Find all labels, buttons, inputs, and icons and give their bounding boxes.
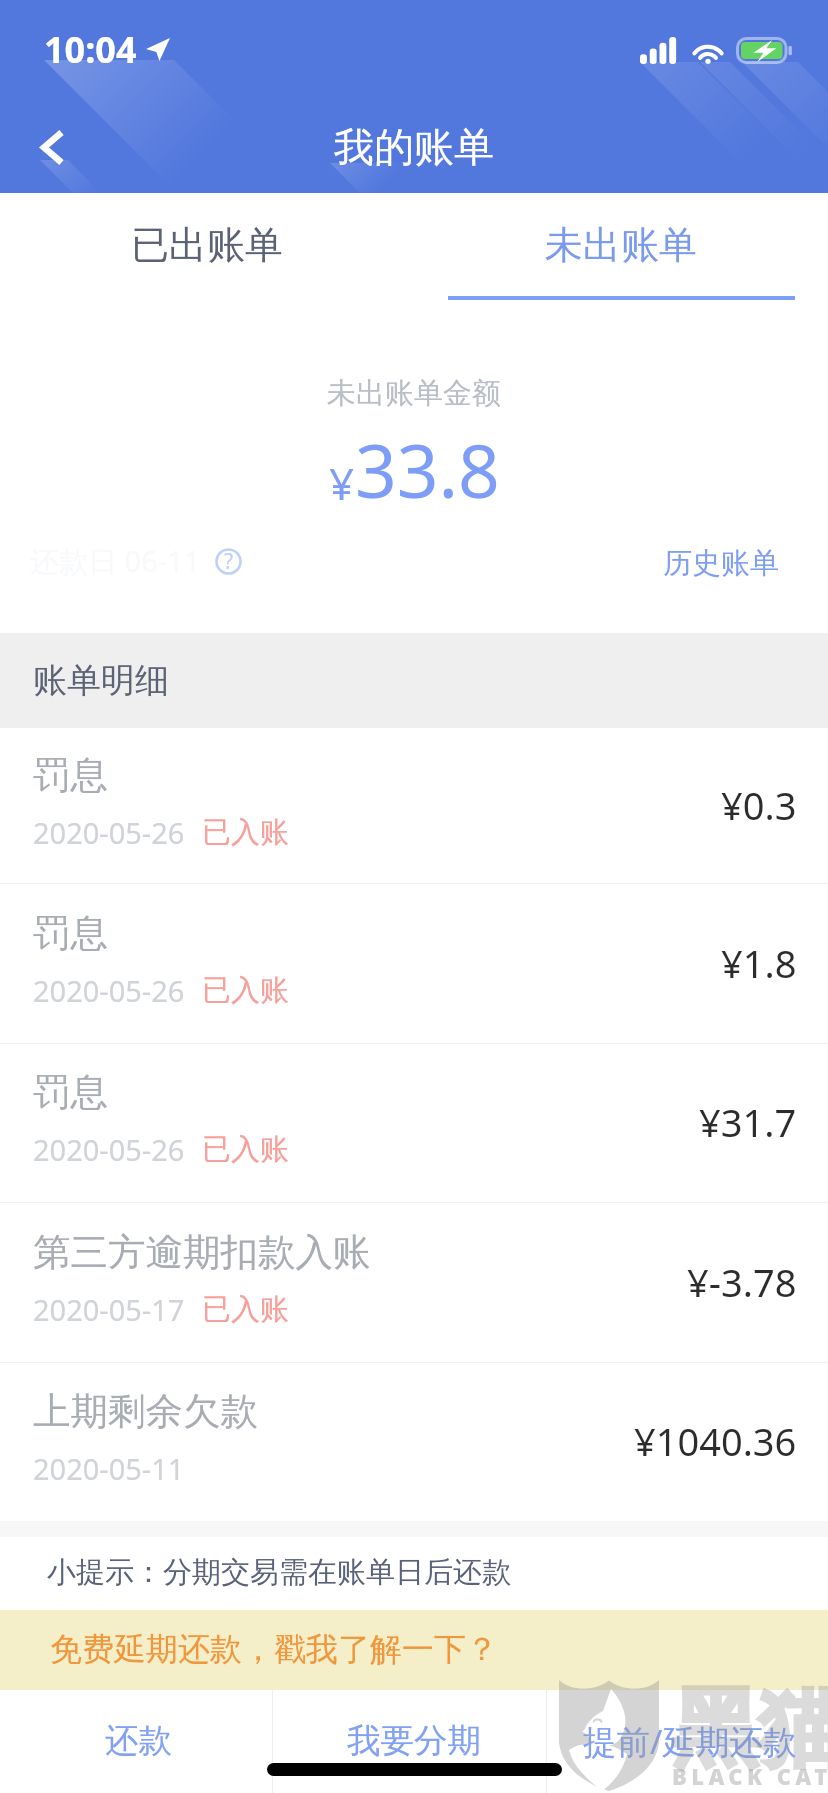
staticText: 2020-05-26 [33,813,185,852]
staticText: 上期剩余欠款 [33,1388,258,1435]
button[interactable]: 未出账单 [414,193,828,303]
staticText: 未出账单 [545,221,697,269]
staticText: 2020-05-26 [33,971,185,1010]
staticText: 还款 [105,1720,172,1762]
button[interactable]: 还款 [0,1690,276,1793]
staticText: 已入账 [202,1291,289,1328]
staticText: 已入账 [202,1131,289,1168]
staticText: 黑猫 [672,1675,828,1783]
staticText: 已出账单 [131,221,283,269]
button[interactable]: 第三方逾期扣款入账 [0,1203,828,1362]
staticText: 罚息 [33,752,108,799]
staticText: 2020-05-26 [33,1130,185,1169]
staticText: 我要分期 [347,1720,481,1762]
button[interactable]: 罚息 [0,884,828,1043]
staticText: 历史账单 [663,545,779,582]
button[interactable]: Back [14,103,90,179]
staticText: 2020-05-11 [33,1449,185,1488]
staticText: 未出账单金额 [327,375,501,412]
staticText: 罚息 [33,910,108,957]
button[interactable]: 上期剩余欠款 [0,1363,828,1521]
staticText: 已入账 [202,814,289,851]
staticText: 我的账单 [334,122,494,172]
staticText: ¥1.8 [721,937,797,989]
staticText: ¥1040.36 [634,1415,797,1467]
button[interactable]: 我要分期 [276,1690,552,1793]
staticText: 账单明细 [33,659,169,702]
button[interactable]: 免费延期还款，戳我了解一下？ [0,1610,828,1690]
staticText: ¥31.7 [699,1096,797,1148]
button[interactable]: 历史账单 [663,545,779,582]
staticText: 罚息 [33,1069,108,1116]
button[interactable]: 罚息 [0,1044,828,1202]
staticText: 第三方逾期扣款入账 [33,1229,371,1276]
button[interactable]: 已出账单 [0,193,414,303]
staticText: ? [224,547,234,576]
staticText: BLACK CAT [672,1761,828,1791]
button[interactable]: 罚息 [0,728,828,883]
staticText: 10:04 [44,25,137,74]
staticText: ¥ [329,453,355,513]
button[interactable]: 提前/延期还款 [552,1690,828,1793]
staticText: 33.8 [355,420,500,519]
staticText: ¥-3.78 [687,1256,797,1308]
staticText: 已入账 [202,972,289,1009]
staticText: 小提示：分期交易需在账单日后还款 [47,1554,511,1591]
staticText: 2020-05-17 [33,1290,185,1329]
staticText: 提前/延期还款 [583,1718,797,1764]
staticText: 免费延期还款，戳我了解一下？ [50,1629,498,1669]
staticText: ¥0.3 [721,779,797,831]
